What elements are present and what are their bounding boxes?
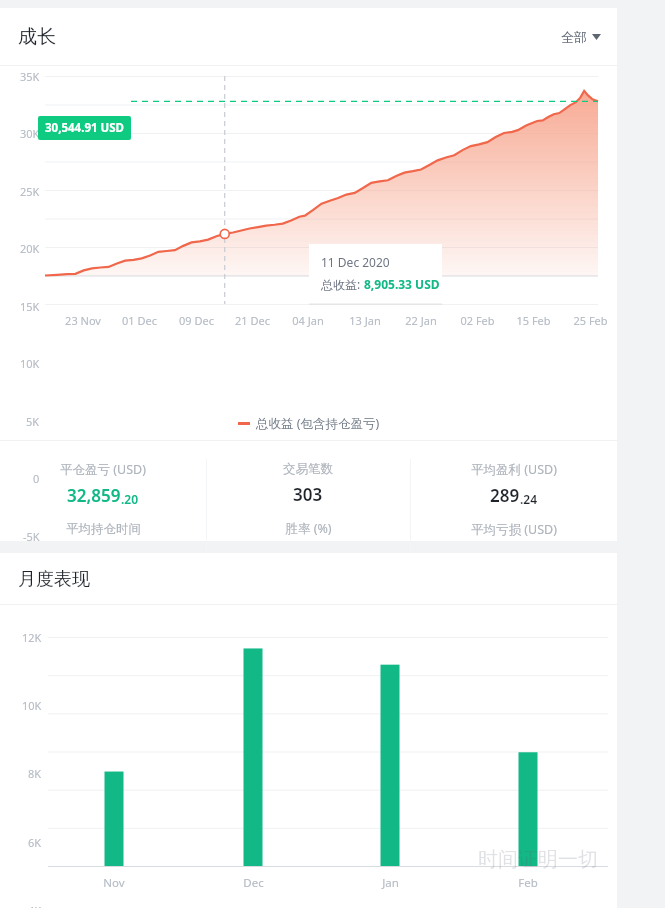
staticText: 8K [28,766,42,781]
staticText: 23 Nov [65,313,101,328]
staticText: 25K [20,184,40,199]
staticText: 4K [28,903,42,908]
staticText: 21 Dec [235,313,270,328]
staticText: 平均盈利 (USD) [471,461,557,478]
staticText: 13 Jan [349,313,381,328]
staticText: Nov [103,875,125,891]
staticText: 35K [20,69,40,84]
staticText: Jan [382,875,399,891]
staticText: 04 Jan [292,313,324,328]
staticText: 10K [20,356,40,371]
button[interactable]: 交易笔数 [206,441,410,541]
staticText: Dec [243,875,264,891]
staticText: 11 Dec 2020 [321,254,390,270]
staticText: .20 [121,491,139,507]
button[interactable]: 平均盈利 (USD) [410,441,617,541]
staticText: 总收益 (包含持仓盈亏) [256,415,380,432]
button[interactable]: 全部 [561,29,601,45]
staticText: 09 Dec [179,313,214,328]
staticText: 平均持仓时间 [66,521,141,537]
staticText: Feb [518,875,538,891]
staticText: 12K [22,630,42,645]
staticText: 0 [33,471,40,486]
staticText: 20K [20,241,40,256]
staticText: 303 [293,483,323,506]
staticText: 平仓盈亏 (USD) [60,461,146,478]
staticText: 02 Feb [460,313,495,328]
staticText: 时间证明一切 [478,847,598,872]
staticText: 30K [20,126,40,141]
staticText: 32,859 [67,484,121,507]
staticText: 6K [28,835,42,850]
staticText: 15K [20,299,40,314]
staticText: 15 Feb [516,313,551,328]
staticText: 总收益: [321,276,364,292]
staticText: 成长 [18,25,56,49]
staticText: 30,544.91 USD [45,120,124,136]
staticText: 交易笔数 [283,461,333,477]
staticText: 22 Jan [405,313,437,328]
staticText: 胜率 (%) [285,520,332,537]
staticText: 10K [22,698,42,713]
staticText: 25 Feb [573,313,608,328]
staticText: .24 [520,491,538,507]
staticText: 8,905.33 USD [364,276,440,292]
staticText: 月度表现 [18,568,90,591]
staticText: 平均亏损 (USD) [471,521,557,538]
staticText: 全部 [561,29,587,45]
button[interactable]: 平仓盈亏 (USD) [0,441,206,541]
staticText: 01 Dec [122,313,157,328]
staticText: -5K [23,529,40,544]
staticText: 5K [26,414,40,429]
staticText: 289 [490,484,520,507]
